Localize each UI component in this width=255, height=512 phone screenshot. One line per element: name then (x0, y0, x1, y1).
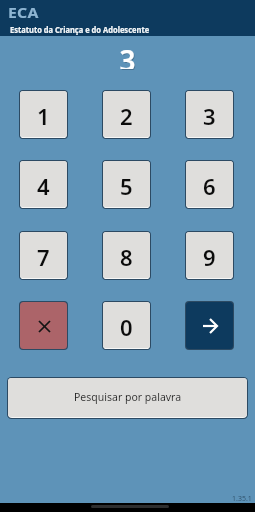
staticText: 9 (203, 242, 216, 272)
button[interactable]: 6 (185, 160, 234, 209)
button[interactable]: Apagar (19, 301, 68, 350)
staticText: 5 (120, 171, 133, 201)
button[interactable]: 7 (19, 231, 68, 280)
staticText: 3 (120, 42, 137, 70)
button[interactable]: 8 (102, 231, 151, 280)
staticText: Pesquisar por palavra (74, 390, 182, 404)
staticText: 1.35.1 (232, 494, 252, 504)
staticText: Estatuto da Criança e do Adolescente (10, 23, 149, 35)
staticText: 2 (120, 101, 133, 131)
button[interactable]: 3 (185, 90, 234, 139)
staticText: 4 (37, 171, 50, 201)
staticText: 3 (203, 101, 216, 131)
staticText: 1 (37, 101, 50, 131)
button[interactable]: 2 (102, 90, 151, 139)
button[interactable]: Ir (185, 301, 234, 350)
button[interactable]: 1 (19, 90, 68, 139)
button[interactable]: 0 (102, 301, 151, 350)
staticText: 3 (119, 41, 136, 69)
staticText: ECA (8, 3, 40, 22)
staticText: 8 (120, 242, 133, 272)
staticText: 6 (203, 171, 216, 201)
button[interactable]: 5 (102, 160, 151, 209)
button[interactable]: Pesquisar por palavra (7, 377, 248, 419)
button[interactable]: 4 (19, 160, 68, 209)
staticText: 0 (120, 312, 133, 342)
button[interactable]: 9 (185, 231, 234, 280)
staticText: 7 (37, 242, 50, 272)
